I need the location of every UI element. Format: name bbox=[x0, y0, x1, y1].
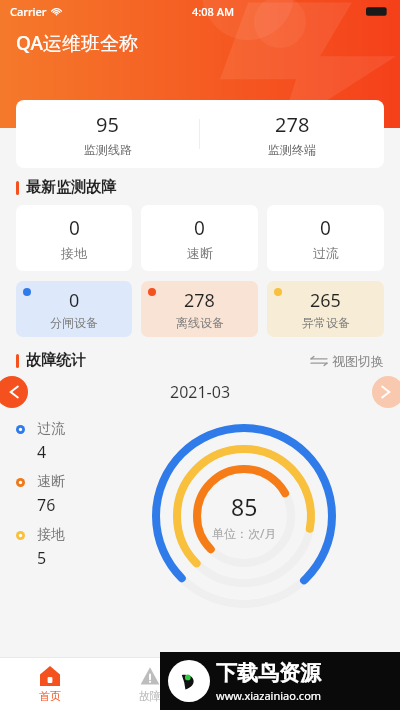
staticText: QA运维班全称 bbox=[16, 30, 138, 56]
staticText: 异常设备 bbox=[302, 315, 350, 330]
staticText: 单位：次/月 bbox=[212, 525, 277, 541]
button[interactable]: Next month bbox=[372, 376, 400, 408]
staticText: 离线设备 bbox=[176, 315, 224, 330]
staticText: 故障统计 bbox=[26, 351, 86, 370]
button[interactable]: 接地 bbox=[16, 526, 65, 569]
staticText: 85 bbox=[231, 491, 258, 522]
staticText: 下载鸟资源 bbox=[216, 660, 321, 686]
staticText: 0 bbox=[69, 288, 80, 313]
button[interactable]: 95 bbox=[16, 100, 384, 168]
button[interactable]: 0 bbox=[16, 205, 132, 271]
staticText: 接地 bbox=[61, 245, 87, 261]
button[interactable]: Tab bbox=[300, 658, 400, 710]
staticText: 5 bbox=[37, 547, 47, 569]
staticText: 95 bbox=[96, 111, 119, 138]
button[interactable]: 过流 bbox=[16, 420, 65, 463]
staticText: 2021-03 bbox=[170, 381, 231, 403]
button[interactable]: 278 bbox=[200, 111, 384, 157]
button[interactable]: 265 bbox=[267, 281, 384, 337]
staticText: 4:08 AM bbox=[192, 4, 235, 19]
staticText: 过流 bbox=[313, 245, 339, 261]
staticText: 视图切换 bbox=[332, 353, 384, 369]
staticText: 速断 bbox=[37, 473, 65, 491]
button[interactable]: 首页 bbox=[0, 658, 100, 710]
staticText: 0 bbox=[320, 215, 331, 241]
button[interactable]: 0 bbox=[267, 205, 384, 271]
button[interactable]: 故障 bbox=[100, 658, 200, 710]
staticText: 分闸设备 bbox=[50, 315, 98, 330]
button[interactable]: 视图切换 bbox=[311, 353, 384, 369]
staticText: 故障 bbox=[139, 689, 161, 703]
staticText: Carrier bbox=[10, 4, 47, 19]
button[interactable]: Tab bbox=[200, 658, 300, 710]
button[interactable]: 278 bbox=[141, 281, 258, 337]
button[interactable]: Previous month bbox=[0, 376, 28, 408]
button[interactable]: 速断 bbox=[16, 473, 65, 516]
staticText: 76 bbox=[37, 494, 56, 516]
staticText: 0 bbox=[69, 215, 80, 241]
button[interactable]: 0 bbox=[16, 281, 132, 337]
staticText: 监测线路 bbox=[84, 142, 132, 157]
button[interactable]: 0 bbox=[141, 205, 258, 271]
staticText: 首页 bbox=[39, 689, 61, 703]
staticText: 最新监测故障 bbox=[26, 178, 116, 197]
staticText: 速断 bbox=[187, 245, 213, 261]
staticText: 265 bbox=[310, 288, 341, 313]
staticText: 0 bbox=[194, 215, 205, 241]
staticText: 4 bbox=[37, 441, 47, 463]
staticText: 278 bbox=[184, 288, 215, 313]
staticText: www.xiazainiao.com bbox=[216, 688, 322, 703]
staticText: 监测终端 bbox=[268, 142, 316, 157]
button[interactable]: 95 bbox=[16, 111, 199, 157]
staticText: 过流 bbox=[37, 420, 65, 438]
staticText: 接地 bbox=[37, 526, 65, 544]
staticText: 278 bbox=[275, 111, 310, 138]
